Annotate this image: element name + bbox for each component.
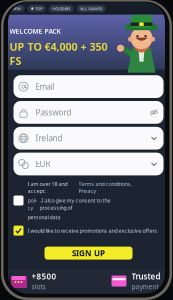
staticText: FS [9,54,21,68]
staticText: SIGN UP [72,248,105,258]
staticText: WELCOME PACK [9,27,60,36]
staticText: payment [131,282,158,291]
staticText: , I also give my consent to the processi… [39,197,110,211]
staticText: Password [35,107,71,118]
button[interactable]: Accept terms and conditions [13,195,23,205]
button[interactable]: TOP [28,5,46,12]
button[interactable]: SIGN UP [44,247,132,260]
staticText: ALL GAMES [80,6,102,11]
staticText: policy [27,197,37,211]
staticText: I am over 18 and accept: [27,180,67,195]
staticText: UP TO €4,000 + 350 [9,40,107,54]
button[interactable]: ALL GAMES [77,5,106,12]
button[interactable]: Receive promotions and exclusive offers [13,226,23,236]
staticText: I would like to receive promotions and e… [27,227,157,234]
staticText: personal data [27,213,60,221]
staticText: Email [35,81,54,92]
button[interactable]: Email [13,75,163,98]
button[interactable]: Password [13,101,163,124]
staticText: NEW [12,6,21,11]
staticText: EUR [35,159,50,169]
button[interactable]: NEW [4,5,25,12]
staticText: Terms and conditions, Privacy [78,180,131,195]
button[interactable]: EUR [13,153,163,175]
staticText: slots [31,282,45,291]
staticText: +8500 [31,271,56,282]
staticText: TOP [35,6,42,11]
staticText: Ireland [35,133,62,143]
staticText: Trusted [131,271,160,282]
staticText: HOLIDAYS [52,6,70,11]
button[interactable]: HOLIDAYS [49,5,74,12]
button[interactable]: Ireland [13,127,163,150]
